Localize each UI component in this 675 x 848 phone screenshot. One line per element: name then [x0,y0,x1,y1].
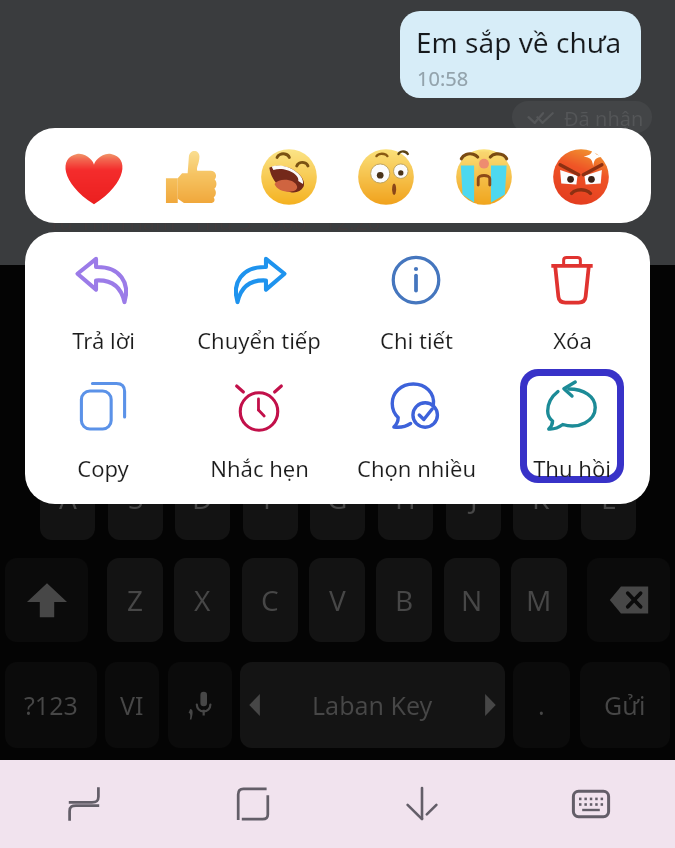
staticText: J [470,479,478,517]
staticText: 10:58 [417,65,469,92]
button[interactable]: M [511,558,567,642]
button[interactable]: H [378,456,433,540]
staticText: Gửi [604,688,646,722]
button[interactable]: Reaction 4 [341,132,431,222]
staticText: Thu hồi [533,453,611,483]
staticText: . [538,688,545,722]
button[interactable]: C [242,558,298,642]
staticText: K [532,479,550,517]
button[interactable]: ?123 [5,662,97,748]
button[interactable]: B [376,558,432,642]
button[interactable]: Hide keyboard [337,760,506,848]
button[interactable]: D [175,456,230,540]
staticText: Từ Thị Thắm Thứ 3 666 12:26 [48,206,381,236]
button[interactable] [516,370,628,470]
button[interactable] [360,370,472,470]
button[interactable]: Reaction 3 [244,132,334,222]
staticText: Em sắp về chưa [416,23,622,61]
staticText: Đã nhận [564,105,644,132]
staticText: H [395,479,416,517]
button[interactable]: Reaction 6 [536,132,626,222]
button[interactable]: Home [168,760,337,848]
staticText: D [192,479,213,517]
button[interactable]: Laban Key [240,662,505,748]
staticText: M [526,581,552,619]
button[interactable]: Recent apps [0,760,168,848]
button[interactable]: Key [5,558,88,642]
button[interactable] [47,370,159,470]
staticText: Laban Key [312,688,433,722]
staticText: Xóa [553,325,592,355]
staticText: N [461,581,483,619]
staticText: Copy [77,453,129,483]
button[interactable] [360,244,472,344]
button[interactable]: Reaction 2 [147,132,237,222]
staticText: ?123 [24,688,78,722]
staticText: C [261,581,279,619]
button[interactable]: G [310,456,365,540]
button[interactable]: Gửi [580,662,670,748]
button[interactable]: VI [105,662,159,748]
button[interactable] [203,244,315,344]
button[interactable]: Switch keyboard [506,760,675,848]
staticText: X [194,581,211,619]
staticText: Chọn nhiều [357,453,476,483]
staticText: A [59,479,77,517]
button[interactable]: Z [107,558,163,642]
staticText: B [395,581,414,619]
staticText: G [327,479,348,517]
button[interactable]: Reaction 5 [439,132,529,222]
staticText: F [263,479,278,517]
button[interactable]: X [174,558,230,642]
staticText: Chuyển tiếp [197,325,321,355]
staticText: VI [120,688,144,722]
button[interactable]: L [581,456,636,540]
staticText: Chi tiết [380,325,453,355]
button[interactable]: Key [587,558,670,642]
button[interactable] [47,244,159,344]
button[interactable]: K [513,456,568,540]
staticText: V [329,581,346,619]
button[interactable]: J [446,456,501,540]
button[interactable]: Key [168,662,232,748]
button[interactable]: A [40,456,95,540]
button[interactable]: F [243,456,298,540]
button[interactable] [516,244,628,344]
staticText: S [128,479,144,517]
button[interactable]: S [108,456,163,540]
button[interactable]: N [444,558,500,642]
staticText: L [601,479,616,517]
button[interactable]: V [309,558,365,642]
staticText: Z [127,581,144,619]
staticText: Nhắc hẹn [210,453,309,483]
button[interactable]: Reaction 1 [49,132,139,222]
button[interactable] [203,370,315,470]
staticText: Trả lời [72,325,135,355]
